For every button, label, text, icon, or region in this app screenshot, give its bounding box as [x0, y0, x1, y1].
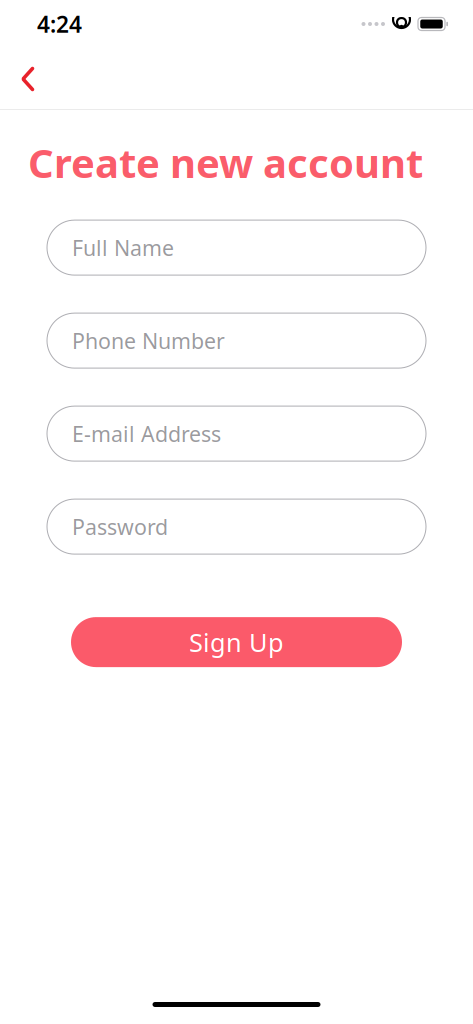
staticText: Sign Up [189, 625, 284, 659]
staticText: Create new account [28, 136, 423, 189]
button[interactable]: Full Name [47, 220, 426, 275]
staticText: E-mail Address [72, 419, 221, 448]
button[interactable]: Password [47, 499, 426, 554]
button[interactable]: E-mail Address [47, 406, 426, 461]
staticText: Phone Number [72, 326, 225, 355]
button[interactable]: Back [8, 57, 48, 101]
button[interactable]: Phone Number [47, 313, 426, 368]
button[interactable]: Sign Up [71, 617, 402, 667]
staticText: Full Name [72, 233, 174, 262]
staticText: Password [72, 512, 168, 541]
staticText: 4:24 [37, 9, 82, 39]
